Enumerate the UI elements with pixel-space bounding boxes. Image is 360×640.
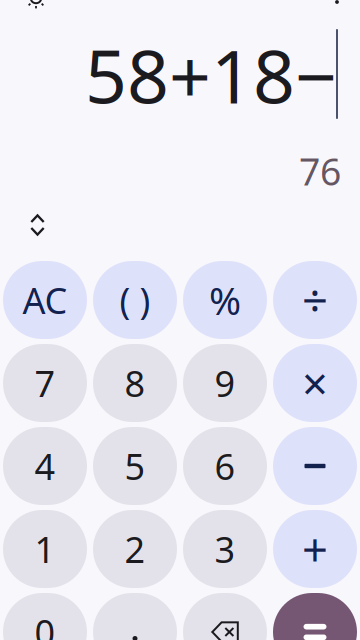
button[interactable]: Decimal point — [93, 593, 177, 640]
staticText: 0 — [34, 608, 55, 640]
staticText: 7 — [34, 359, 55, 407]
staticText: 3 — [214, 525, 235, 573]
button[interactable]: 9 — [183, 344, 267, 422]
staticText: × — [302, 353, 328, 413]
button[interactable]: Show history — [30, 214, 45, 236]
staticText: 1 — [34, 525, 55, 573]
button[interactable]: 2 — [93, 510, 177, 588]
button[interactable]: All clear — [3, 261, 87, 339]
staticText: 8 — [124, 359, 145, 407]
staticText: 6 — [214, 442, 235, 490]
staticText: ( ) — [119, 276, 150, 324]
button[interactable]: Divide — [273, 261, 357, 339]
staticText: 4 — [34, 442, 55, 490]
button[interactable]: Backspace — [183, 593, 267, 640]
button[interactable]: 7 — [3, 344, 87, 422]
staticText: AC — [22, 276, 67, 324]
button[interactable]: 8 — [93, 344, 177, 422]
button[interactable]: Toggle theme — [25, 0, 47, 9]
button[interactable]: Plus — [273, 510, 357, 588]
button[interactable]: 5 — [93, 427, 177, 505]
button[interactable]: 4 — [3, 427, 87, 505]
staticText: % — [209, 274, 241, 326]
button[interactable]: Multiply — [273, 344, 357, 422]
staticText: 5 — [124, 442, 145, 490]
button[interactable]: Equals — [273, 593, 357, 640]
staticText: 2 — [124, 525, 145, 573]
button[interactable]: More options — [328, 0, 346, 4]
button[interactable]: Percent — [183, 261, 267, 339]
staticText: 76 — [299, 146, 341, 196]
button[interactable]: 1 — [3, 510, 87, 588]
button[interactable]: Minus — [273, 427, 357, 505]
staticText: 9 — [214, 359, 235, 407]
button[interactable]: Parentheses — [93, 261, 177, 339]
button[interactable]: 3 — [183, 510, 267, 588]
staticText: ÷ — [302, 270, 328, 330]
staticText: + — [302, 519, 328, 579]
button[interactable]: 6 — [183, 427, 267, 505]
staticText: 58+18− — [85, 26, 337, 124]
button[interactable]: 0 — [3, 593, 87, 640]
